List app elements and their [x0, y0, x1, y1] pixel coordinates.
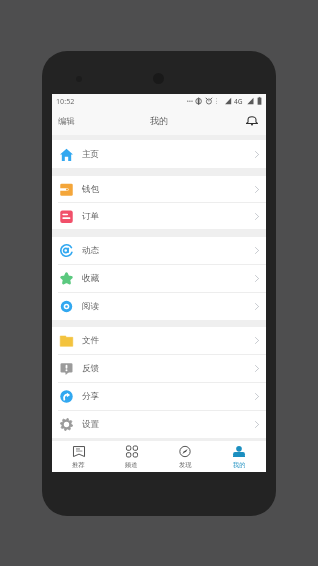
staticText: 10:52	[56, 96, 75, 106]
button[interactable]: 动态	[52, 237, 266, 264]
button[interactable]: 阅读	[52, 293, 266, 320]
staticText: 分享	[82, 391, 100, 402]
staticText: 阅读	[82, 301, 100, 312]
staticText: 频道	[125, 461, 138, 469]
button[interactable]: 钱包	[52, 176, 266, 202]
staticText: 我的	[150, 115, 169, 127]
staticText: 我的	[233, 461, 246, 469]
staticText: 主页	[82, 149, 100, 160]
staticText: 反馈	[82, 363, 100, 374]
staticText: 订单	[82, 211, 100, 222]
staticText: 钱包	[82, 184, 100, 195]
staticText: 推荐	[72, 461, 85, 469]
button[interactable]: 编辑	[52, 107, 81, 135]
button[interactable]: 主页	[52, 140, 266, 168]
staticText: 发现	[179, 461, 192, 469]
button[interactable]: 我的	[212, 441, 266, 472]
button[interactable]: 推荐	[52, 441, 105, 472]
staticText: 收藏	[82, 273, 100, 284]
button[interactable]: 发现	[158, 441, 212, 472]
staticText: 编辑	[58, 116, 75, 127]
staticText: 动态	[82, 245, 100, 256]
button[interactable]: 订单	[52, 203, 266, 229]
button[interactable]: 设置	[52, 411, 266, 438]
button[interactable]: 收藏	[52, 265, 266, 292]
button[interactable]: 反馈	[52, 355, 266, 382]
button[interactable]: Notifications	[238, 107, 266, 135]
button[interactable]: 频道	[105, 441, 158, 472]
button[interactable]: 分享	[52, 383, 266, 410]
staticText: 文件	[82, 335, 100, 346]
staticText: 设置	[82, 419, 100, 430]
staticText: 4G	[234, 97, 243, 106]
button[interactable]: 文件	[52, 327, 266, 354]
